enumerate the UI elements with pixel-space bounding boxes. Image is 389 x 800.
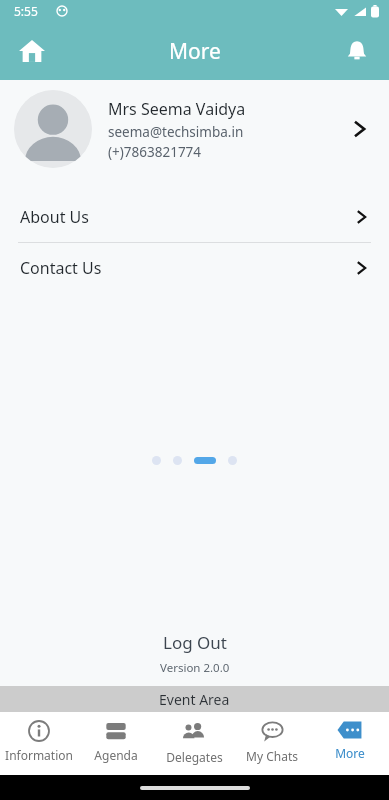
button[interactable]: Mrs Seema Vaidya [0, 80, 389, 178]
staticText: My Chats [246, 748, 298, 764]
button[interactable]: Home [8, 27, 56, 75]
staticText: Event Area [159, 690, 230, 709]
staticText: Log Out [163, 631, 227, 654]
staticText: More [335, 745, 365, 761]
button[interactable]: Contact Us [0, 243, 389, 293]
button[interactable]: Notifications [333, 27, 381, 75]
button[interactable]: Delegates [155, 712, 233, 775]
staticText: Information [5, 747, 73, 763]
staticText: seema@techsimba.in [108, 123, 244, 141]
button[interactable]: Event Area [0, 686, 389, 712]
button[interactable]: Agenda [77, 712, 155, 775]
staticText: Contact Us [20, 257, 353, 279]
button[interactable]: More [311, 712, 389, 775]
button[interactable]: Information [0, 712, 77, 775]
button[interactable]: About Us [0, 192, 389, 242]
staticText: Agenda [94, 747, 138, 763]
button[interactable]: My Chats [233, 712, 311, 775]
staticText: Delegates [166, 749, 223, 765]
staticText: About Us [20, 206, 353, 228]
staticText: (+)7863821774 [108, 143, 202, 161]
staticText: Mrs Seema Vaidya [108, 98, 246, 120]
staticText: More [169, 37, 221, 66]
staticText: Version 2.0.0 [160, 660, 230, 676]
button[interactable]: Log Out [141, 628, 249, 657]
staticText: 5:55 [14, 3, 38, 19]
